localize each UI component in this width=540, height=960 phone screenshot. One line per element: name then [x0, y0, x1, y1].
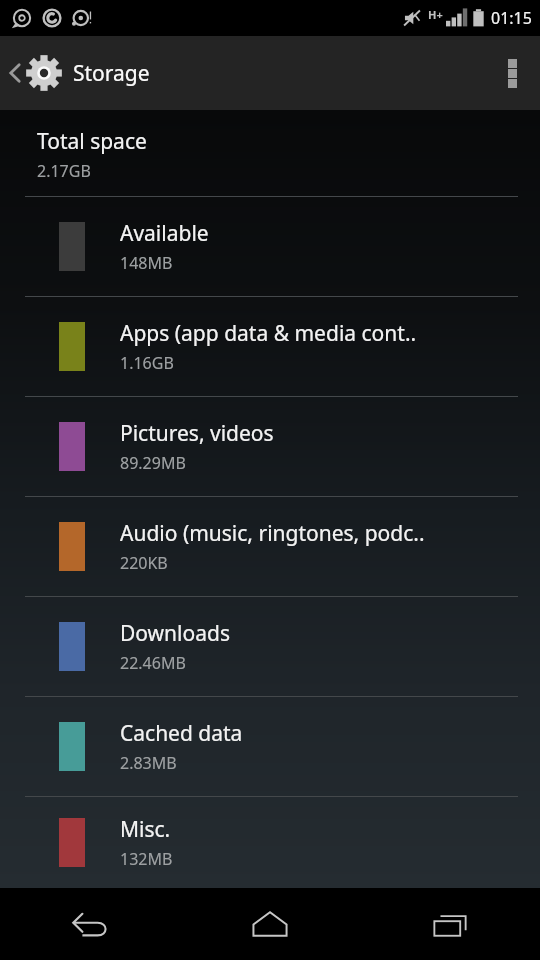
- staticText: 220KB: [120, 552, 168, 574]
- staticText: Apps (app data & media cont..: [120, 319, 417, 348]
- button[interactable]: More options: [484, 36, 540, 110]
- staticText: Audio (music, ringtones, podc..: [120, 519, 425, 548]
- button[interactable]: Pictures, videos: [0, 397, 540, 496]
- staticText: Cached data: [120, 719, 243, 748]
- staticText: Available: [120, 219, 209, 248]
- staticText: 2.17GB: [37, 160, 91, 182]
- staticText: H+: [428, 7, 443, 22]
- button[interactable]: Misc.: [0, 797, 540, 888]
- staticText: 148MB: [120, 252, 173, 274]
- button[interactable]: Downloads: [0, 597, 540, 696]
- button[interactable]: Recent apps: [360, 888, 540, 960]
- staticText: Pictures, videos: [120, 419, 274, 448]
- button[interactable]: Available: [0, 197, 540, 296]
- staticText: 22.46MB: [120, 652, 186, 674]
- button[interactable]: Back: [0, 888, 180, 960]
- staticText: Downloads: [120, 619, 230, 648]
- staticText: 01:15: [491, 7, 532, 29]
- staticText: Total space: [37, 127, 147, 156]
- staticText: 1.16GB: [120, 352, 174, 374]
- button[interactable]: Home: [180, 888, 360, 960]
- staticText: Storage: [73, 59, 150, 88]
- button[interactable]: Cached data: [0, 697, 540, 796]
- staticText: 2.83MB: [120, 752, 177, 774]
- staticText: 89.29MB: [120, 452, 186, 474]
- button[interactable]: Apps (app data & media cont..: [0, 297, 540, 396]
- staticText: 132MB: [120, 848, 173, 870]
- button[interactable]: Audio (music, ringtones, podc..: [0, 497, 540, 596]
- button[interactable]: Navigate up, Settings: [0, 46, 158, 100]
- staticText: Misc.: [120, 815, 171, 844]
